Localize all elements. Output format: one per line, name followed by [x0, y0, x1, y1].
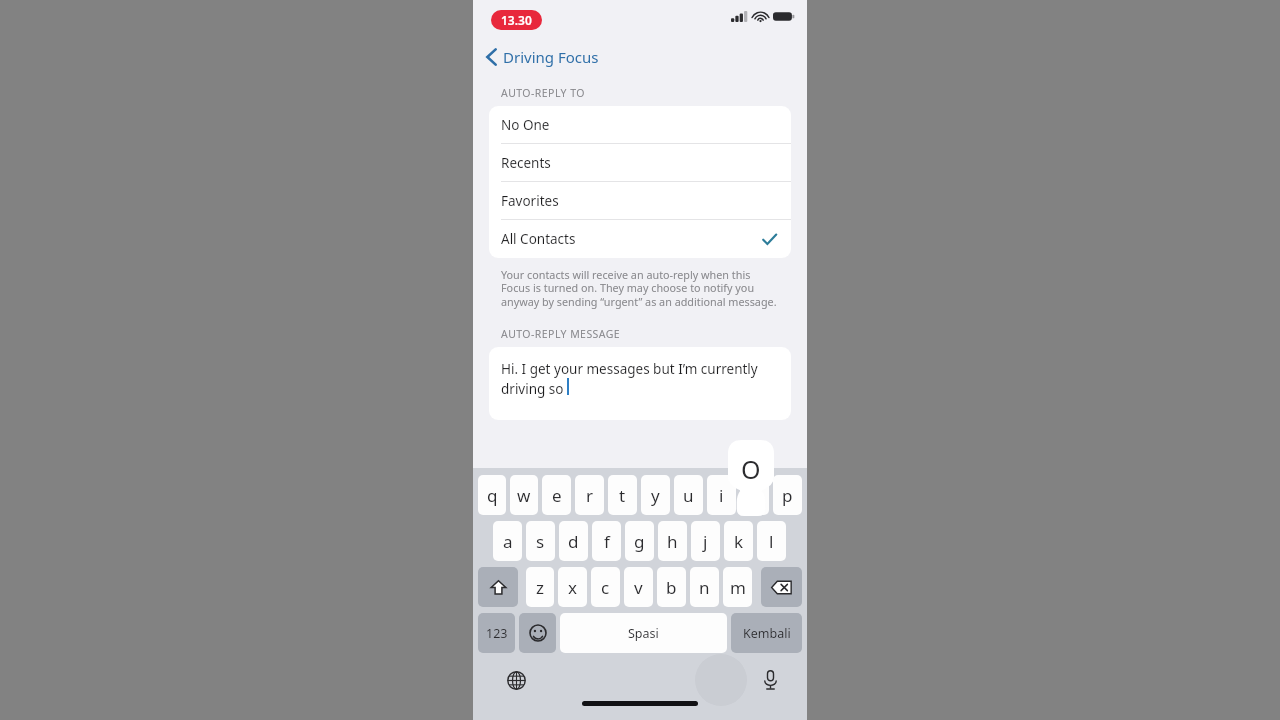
button[interactable]: Assistant — [695, 654, 747, 706]
button[interactable]: Change keyboard — [501, 665, 531, 695]
staticText: r — [586, 484, 594, 507]
button[interactable]: y — [641, 475, 670, 515]
button[interactable]: j — [691, 521, 720, 561]
button[interactable]: h — [658, 521, 687, 561]
staticText: j — [703, 530, 708, 553]
staticText: y — [651, 484, 660, 507]
staticText: Hi. I get your messages but I’m currentl… — [501, 360, 781, 398]
button[interactable]: Shift — [478, 567, 518, 607]
button[interactable]: k — [724, 521, 753, 561]
button[interactable]: s — [526, 521, 555, 561]
button[interactable]: Kembali — [731, 613, 802, 653]
button[interactable]: z — [526, 567, 554, 607]
button[interactable]: t — [608, 475, 637, 515]
staticText: Spasi — [628, 625, 659, 642]
staticText: No One — [501, 116, 777, 134]
button[interactable]: x — [558, 567, 587, 607]
button[interactable]: p — [773, 475, 802, 515]
staticText: Recents — [501, 154, 777, 172]
staticText: i — [719, 484, 724, 507]
staticText: v — [634, 576, 643, 599]
staticText: 123 — [486, 625, 508, 642]
button[interactable]: o — [740, 475, 769, 515]
staticText: g — [634, 530, 645, 553]
button[interactable]: d — [559, 521, 588, 561]
staticText: All Contacts — [501, 230, 762, 248]
button[interactable]: g — [625, 521, 654, 561]
staticText: AUTO-REPLY TO — [501, 86, 585, 100]
staticText: n — [699, 576, 710, 599]
staticText: f — [604, 530, 610, 553]
staticText: Kembali — [743, 625, 791, 642]
staticText: x — [568, 576, 577, 599]
button[interactable]: v — [624, 567, 653, 607]
button[interactable]: Dictate — [755, 665, 785, 695]
staticText: c — [601, 576, 610, 599]
button[interactable]: i — [707, 475, 736, 515]
button[interactable]: c — [591, 567, 620, 607]
button[interactable]: m — [723, 567, 752, 607]
button[interactable]: Recents — [489, 144, 791, 182]
staticText: m — [730, 576, 746, 599]
staticText: AUTO-REPLY MESSAGE — [501, 327, 621, 341]
button[interactable]: l — [757, 521, 786, 561]
button[interactable]: u — [674, 475, 703, 515]
staticText: d — [568, 530, 579, 553]
button[interactable]: a — [493, 521, 522, 561]
button[interactable]: Spasi — [560, 613, 727, 653]
button[interactable]: f — [592, 521, 621, 561]
button[interactable]: Backspace — [761, 567, 802, 607]
staticText: O — [741, 452, 761, 486]
staticText: Favorites — [501, 192, 777, 210]
button[interactable]: w — [510, 475, 538, 515]
staticText: w — [517, 484, 531, 507]
staticText: u — [683, 484, 694, 507]
button[interactable]: Favorites — [489, 182, 791, 220]
staticText: a — [503, 530, 513, 553]
button[interactable]: e — [542, 475, 571, 515]
staticText: t — [619, 484, 626, 507]
button[interactable]: r — [575, 475, 604, 515]
button[interactable]: n — [690, 567, 719, 607]
button[interactable]: Emoji — [519, 613, 556, 653]
staticText: z — [536, 576, 544, 599]
staticText: b — [666, 576, 677, 599]
button[interactable]: All Contacts — [489, 220, 791, 258]
staticText: Driving Focus — [503, 47, 599, 67]
staticText: h — [667, 530, 678, 553]
button[interactable]: No One — [489, 106, 791, 144]
staticText: q — [487, 484, 498, 507]
staticText: s — [536, 530, 545, 553]
staticText: p — [782, 484, 793, 507]
staticText: e — [552, 484, 562, 507]
staticText: Your contacts will receive an auto-reply… — [501, 267, 779, 309]
button[interactable]: Hi. I get your messages but I’m currentl… — [489, 347, 791, 420]
staticText: k — [734, 530, 744, 553]
button[interactable]: b — [657, 567, 686, 607]
button[interactable]: 123 — [478, 613, 515, 653]
button[interactable]: Driving Focus — [473, 40, 807, 74]
staticText: l — [769, 530, 774, 553]
button[interactable]: q — [478, 475, 506, 515]
staticText: 13.30 — [501, 12, 532, 28]
